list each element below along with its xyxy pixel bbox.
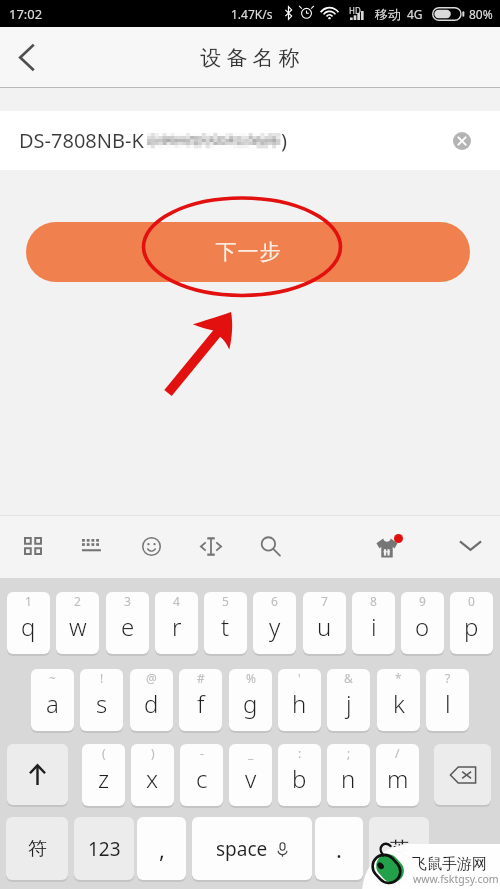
button[interactable]: 3 — [106, 592, 149, 654]
button[interactable]: : — [278, 744, 321, 806]
button[interactable]: ~ — [31, 669, 74, 731]
button[interactable]: 1 — [7, 592, 50, 654]
staticText: * — [395, 670, 402, 686]
staticText: ' — [298, 670, 301, 686]
button[interactable]: * — [377, 669, 420, 731]
staticText: , — [159, 834, 165, 864]
button[interactable]: ' — [278, 669, 321, 731]
button[interactable]: Edit cursor — [191, 526, 231, 566]
button[interactable]: 9 — [401, 592, 444, 654]
staticText: 5 — [222, 593, 229, 609]
staticText: 下一步 — [215, 239, 281, 265]
button[interactable]: 123 — [74, 817, 134, 880]
button[interactable]: & — [327, 669, 370, 731]
button[interactable]: ? — [426, 669, 469, 731]
staticText: j — [346, 687, 352, 720]
button[interactable]: 6 — [253, 592, 296, 654]
button[interactable]: _ — [229, 744, 272, 806]
staticText: 4 — [173, 593, 180, 609]
staticText: h — [292, 687, 307, 720]
button[interactable]: 5 — [204, 592, 247, 654]
staticText: i — [371, 610, 377, 643]
staticText: g — [243, 687, 258, 720]
button[interactable]: 4 — [155, 592, 198, 654]
button[interactable]: ! — [80, 669, 123, 731]
staticText: m — [387, 762, 409, 795]
button[interactable]: 英 — [369, 817, 429, 880]
staticText: t — [221, 610, 230, 643]
button[interactable]: # — [179, 669, 222, 731]
staticText: & — [344, 670, 353, 686]
button[interactable]: Back — [0, 27, 52, 88]
staticText: 80% — [469, 6, 493, 22]
button[interactable]: @ — [130, 669, 173, 731]
staticText: 1.47K/s — [231, 6, 273, 22]
button[interactable]: . — [315, 817, 363, 880]
button[interactable]: 8 — [352, 592, 395, 654]
button[interactable]: , — [137, 817, 186, 880]
button[interactable]: ; — [327, 744, 370, 806]
staticText: / — [395, 745, 400, 761]
staticText: p — [464, 610, 479, 643]
staticText: c — [196, 762, 208, 795]
staticText: 9 — [419, 593, 426, 609]
staticText: z — [98, 762, 110, 795]
staticText: 7 — [321, 593, 328, 609]
button[interactable]: Keyboard — [72, 526, 112, 566]
staticText: DS-7808NB-K — [19, 127, 144, 154]
button[interactable]: Hide keyboard — [450, 526, 490, 566]
staticText: @ — [146, 670, 157, 686]
button[interactable]: 7 — [303, 592, 346, 654]
staticText: 1 — [25, 593, 32, 609]
staticText: 6 — [271, 593, 278, 609]
button[interactable]: 2 — [56, 592, 99, 654]
staticText: 2 — [74, 593, 81, 609]
staticText: : — [298, 745, 302, 761]
staticText: 3 — [124, 593, 131, 609]
staticText: % — [246, 670, 256, 686]
staticText: 设备名称 — [198, 45, 302, 71]
staticText: 移动 — [375, 6, 401, 22]
staticText: ~ — [49, 670, 56, 686]
staticText: www.fsktgsy.com — [413, 872, 499, 886]
staticText: x — [146, 762, 159, 795]
staticText: l — [445, 687, 451, 720]
staticText: o — [415, 610, 430, 643]
button[interactable]: 0 — [450, 592, 493, 654]
staticText: 0 — [468, 593, 475, 609]
staticText: 123 — [88, 836, 121, 862]
button[interactable]: 符 — [6, 817, 68, 880]
staticText: q — [21, 610, 36, 643]
staticText: r — [172, 610, 182, 643]
staticText: 8 — [370, 593, 377, 609]
staticText: f — [197, 687, 205, 720]
staticText: . — [336, 834, 342, 864]
button[interactable]: Search — [250, 526, 290, 566]
button[interactable]: Shift — [7, 744, 68, 805]
staticText: ) — [281, 127, 287, 154]
button[interactable]: - — [180, 744, 223, 806]
button[interactable]: ( — [82, 744, 125, 806]
button[interactable]: 下一步 — [26, 222, 470, 282]
staticText: n — [341, 762, 356, 795]
staticText: ? — [445, 670, 451, 686]
button[interactable]: / — [376, 744, 419, 806]
button[interactable]: Clear text — [442, 121, 482, 161]
staticText: d — [144, 687, 159, 720]
staticText: 英 — [390, 837, 409, 861]
staticText: # — [197, 670, 205, 686]
staticText: k — [393, 687, 405, 720]
staticText: 17:02 — [9, 5, 43, 23]
button[interactable]: % — [229, 669, 272, 731]
staticText: HD — [349, 5, 361, 16]
button[interactable]: Emoji — [131, 526, 171, 566]
staticText: w — [69, 610, 87, 643]
staticText: ; — [347, 745, 351, 761]
staticText: y — [269, 610, 281, 643]
staticText: v — [245, 762, 257, 795]
button[interactable]: ) — [131, 744, 174, 806]
button[interactable]: Backspace — [434, 744, 491, 805]
button[interactable]: Apps — [13, 526, 53, 566]
button[interactable]: space — [192, 817, 312, 880]
button[interactable]: Themes — [373, 526, 413, 566]
